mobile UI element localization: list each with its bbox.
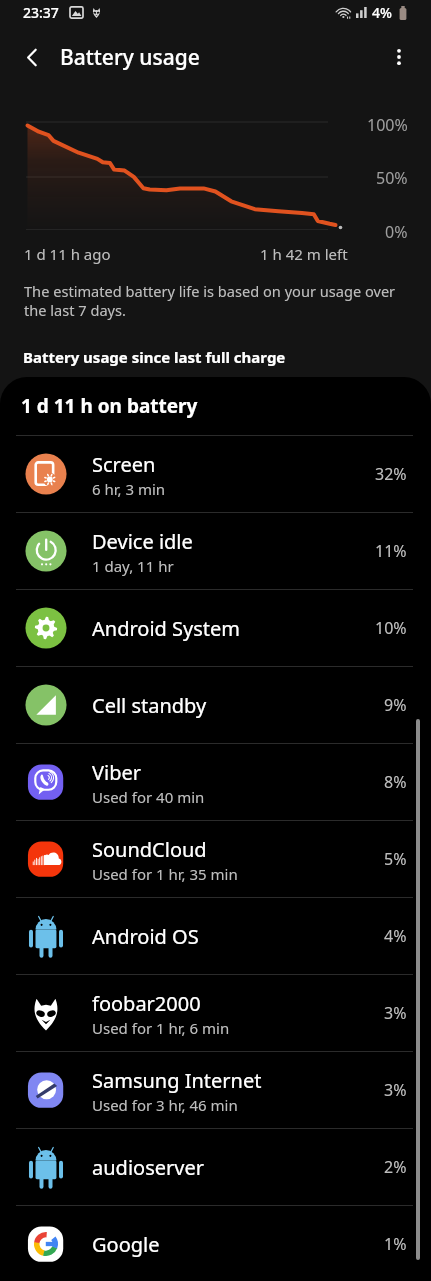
staticText: 9% <box>384 694 407 716</box>
staticText: Battery usage since last full charge <box>23 347 286 367</box>
button[interactable]: Back <box>12 37 52 77</box>
staticText: Used for 1 hr, 6 min <box>92 1018 230 1038</box>
staticText: 1 d 11 h on battery <box>21 393 198 419</box>
button[interactable]: Screen <box>0 436 431 512</box>
staticText: 1 day, 11 hr <box>92 556 174 576</box>
staticText: Used for 40 min <box>92 787 205 807</box>
button[interactable]: More options <box>379 37 419 77</box>
staticText: 4% <box>384 925 407 947</box>
staticText: Used for 1 hr, 35 min <box>92 864 238 884</box>
button[interactable]: Android OS <box>0 898 431 974</box>
staticText: 10% <box>375 617 407 639</box>
staticText: 4% <box>372 3 392 22</box>
staticText: 100% <box>367 114 408 136</box>
staticText: 1 h 42 m left <box>260 244 348 264</box>
staticText: 32% <box>375 463 407 485</box>
staticText: 8% <box>384 771 407 793</box>
staticText: Android System <box>92 615 241 642</box>
button[interactable]: Viber <box>0 744 431 820</box>
staticText: Samsung Internet <box>92 1067 262 1094</box>
staticText: 23:37 <box>23 3 59 22</box>
staticText: 1 d 11 h ago <box>24 244 111 264</box>
staticText: Google <box>92 1231 160 1258</box>
staticText: foobar2000 <box>92 990 201 1017</box>
staticText: 11% <box>375 540 407 562</box>
staticText: Cell standby <box>92 692 207 719</box>
button[interactable]: Samsung Internet <box>0 1052 431 1128</box>
staticText: 1% <box>384 1233 407 1255</box>
staticText: Viber <box>92 759 141 786</box>
button[interactable]: Android System <box>0 590 431 666</box>
staticText: 2% <box>384 1156 407 1178</box>
button[interactable]: Cell standby <box>0 667 431 743</box>
button[interactable]: audioserver <box>0 1129 431 1205</box>
staticText: 6 hr, 3 min <box>92 479 166 499</box>
staticText: Battery usage <box>60 43 200 72</box>
button[interactable]: SoundCloud <box>0 821 431 897</box>
staticText: SoundCloud <box>92 836 207 863</box>
button[interactable]: foobar2000 <box>0 975 431 1051</box>
staticText: 5% <box>384 848 407 870</box>
staticText: Device idle <box>92 528 193 555</box>
staticText: audioserver <box>92 1154 204 1181</box>
button[interactable]: Google <box>0 1206 431 1281</box>
staticText: The estimated battery life is based on y… <box>24 281 398 320</box>
staticText: Android OS <box>92 923 199 950</box>
staticText: Screen <box>92 451 156 478</box>
staticText: 3% <box>384 1002 407 1024</box>
button[interactable]: Device idle <box>0 513 431 589</box>
staticText: 3% <box>384 1079 407 1101</box>
staticText: 0% <box>385 221 408 243</box>
staticText: Used for 3 hr, 46 min <box>92 1095 238 1115</box>
staticText: 50% <box>376 167 408 189</box>
